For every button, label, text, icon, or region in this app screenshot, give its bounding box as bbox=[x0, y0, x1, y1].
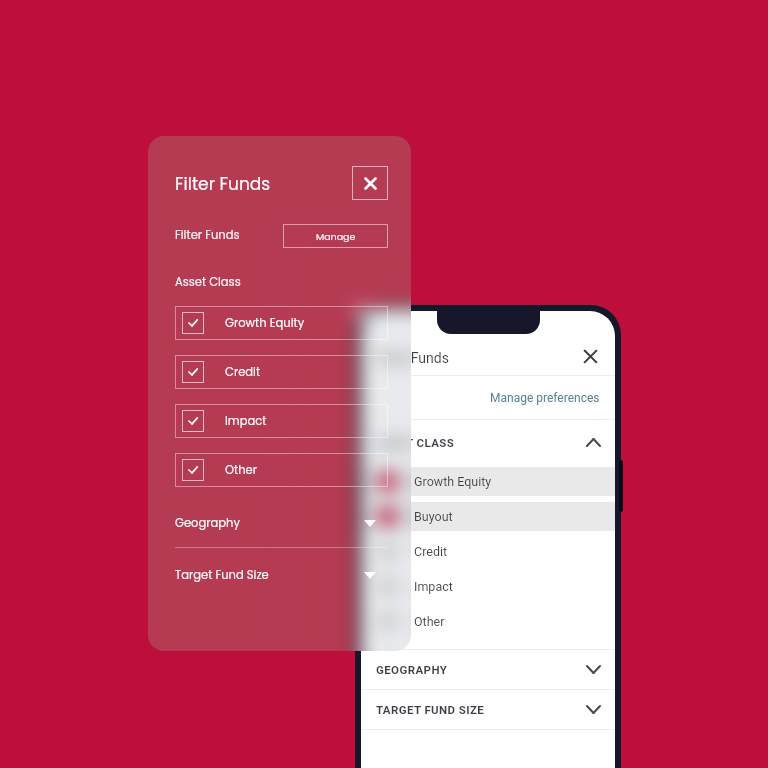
staticText: Growth Equity bbox=[414, 474, 492, 489]
staticText: Growth Equity bbox=[225, 315, 305, 331]
button[interactable]: Target Fund Size bbox=[175, 562, 388, 588]
button[interactable]: Manage preferences bbox=[361, 376, 615, 419]
staticText: Impact bbox=[414, 579, 453, 594]
button[interactable]: Growth Equity bbox=[361, 467, 411, 496]
staticText: Buyout bbox=[414, 509, 453, 524]
staticText: Geography bbox=[175, 515, 240, 531]
button[interactable]: Buyout bbox=[361, 502, 615, 531]
staticText: ASSET CLASS bbox=[376, 436, 411, 449]
button[interactable]: Manage preferences bbox=[361, 376, 411, 419]
button[interactable]: Growth Equity bbox=[175, 306, 388, 340]
button[interactable]: GEOGRAPHY bbox=[361, 650, 615, 689]
staticText: Credit bbox=[414, 544, 448, 559]
button[interactable]: GEOGRAPHY bbox=[361, 650, 411, 651]
button[interactable]: Other bbox=[175, 453, 388, 487]
staticText: Manage bbox=[316, 230, 356, 243]
button[interactable]: Impact bbox=[175, 404, 388, 438]
button[interactable]: Credit bbox=[361, 537, 615, 566]
staticText: Filter Funds bbox=[175, 172, 271, 196]
staticText: TARGET FUND SIZE bbox=[376, 703, 485, 716]
button[interactable]: Impact bbox=[361, 572, 411, 601]
staticText: Filter Funds bbox=[175, 227, 240, 243]
button[interactable]: Credit bbox=[175, 355, 388, 389]
staticText: GEOGRAPHY bbox=[376, 663, 448, 676]
staticText: Manage preferences bbox=[490, 391, 600, 405]
button[interactable]: Growth Equity bbox=[361, 467, 615, 496]
button[interactable]: Manage bbox=[283, 224, 388, 248]
button[interactable]: Close bbox=[580, 346, 600, 366]
button[interactable]: Other bbox=[361, 607, 411, 636]
staticText: Filter Funds bbox=[376, 350, 411, 366]
button[interactable]: ASSET CLASS bbox=[361, 420, 411, 464]
staticText: Asset Class bbox=[175, 274, 241, 290]
button[interactable]: ASSET CLASS bbox=[361, 420, 615, 464]
button[interactable]: Other bbox=[361, 607, 615, 636]
button[interactable]: Close bbox=[352, 166, 388, 200]
button[interactable]: TARGET FUND SIZE bbox=[361, 690, 615, 729]
button[interactable]: Impact bbox=[361, 572, 615, 601]
staticText: Credit bbox=[225, 364, 261, 380]
staticText: Target Fund Size bbox=[175, 567, 269, 583]
staticText: Other bbox=[414, 614, 445, 629]
button[interactable]: Credit bbox=[361, 537, 411, 566]
button[interactable]: Buyout bbox=[361, 502, 411, 531]
staticText: ASSET CLASS bbox=[376, 436, 455, 449]
button[interactable]: Geography bbox=[175, 510, 388, 536]
staticText: Filter Funds bbox=[376, 350, 449, 366]
staticText: Impact bbox=[225, 413, 267, 429]
staticText: Other bbox=[225, 462, 258, 478]
